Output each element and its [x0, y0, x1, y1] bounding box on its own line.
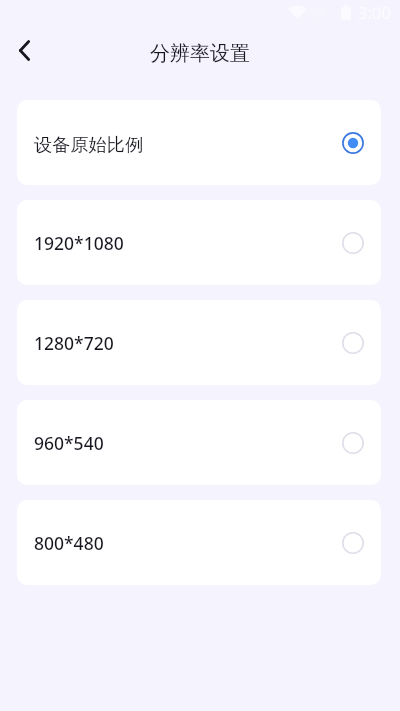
staticText: 1280*720	[34, 331, 114, 355]
button[interactable]: 返回	[4, 30, 44, 70]
staticText: 800*480	[34, 531, 104, 555]
button[interactable]: 800*480	[17, 500, 381, 585]
staticText: 960*540	[34, 431, 104, 455]
staticText: 1920*1080	[34, 231, 124, 255]
staticText: 分辨率设置	[150, 41, 250, 66]
button[interactable]: 960*540	[17, 400, 381, 485]
staticText: 设备原始比例	[34, 133, 144, 156]
button[interactable]: 1920*1080	[17, 200, 381, 285]
button[interactable]: 设备原始比例	[17, 100, 381, 185]
button[interactable]: 1280*720	[17, 300, 381, 385]
